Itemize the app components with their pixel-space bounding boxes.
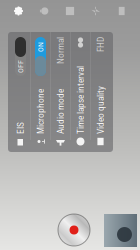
staticText: Video quality: [61, 150, 109, 161]
button[interactable]: Video quality: [43, 146, 140, 165]
button[interactable]: EIS: [43, 66, 140, 85]
button[interactable]: Microphone: [43, 86, 140, 105]
button[interactable]: Audio mode: [43, 106, 140, 125]
staticText: Time lapse interval: [61, 130, 129, 141]
staticText: Microphone: [61, 90, 106, 101]
button[interactable]: Time lapse interval: [43, 126, 140, 145]
staticText: Audio mode: [61, 110, 106, 121]
